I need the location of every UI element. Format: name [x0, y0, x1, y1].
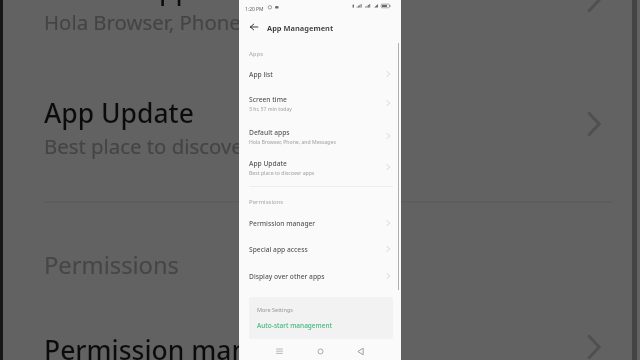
button[interactable]: Special app access [239, 236, 401, 263]
staticText: Apps [249, 50, 264, 58]
button[interactable]: Default apps [3, 0, 640, 53]
button[interactable]: More Settings [249, 297, 393, 339]
staticText: App list [249, 70, 273, 79]
button[interactable]: App list [239, 61, 401, 88]
staticText: Default apps [44, 0, 205, 7]
staticText: Best place to discover apps [44, 132, 303, 160]
staticText: Permissions [249, 198, 284, 206]
button[interactable]: Back [249, 22, 258, 31]
staticText: Screen time [249, 95, 287, 104]
staticText: Permissions [44, 249, 179, 281]
staticText: Permission manager [249, 219, 316, 228]
staticText: Special app access [249, 245, 308, 254]
button[interactable]: App Update [239, 154, 401, 180]
button[interactable]: Back [353, 344, 367, 358]
staticText: App Management [267, 23, 334, 33]
staticText: Hola Browser, Phone, and Messages [44, 8, 388, 36]
button[interactable]: Permission manager [239, 210, 401, 237]
staticText: Display over other apps [249, 272, 325, 281]
staticText: 3 hr, 57 min today [249, 105, 292, 112]
button[interactable]: App Update [3, 74, 640, 177]
button[interactable]: Permission manager [3, 295, 640, 360]
staticText: Hola Browser, Phone, and Messages [249, 138, 336, 145]
button[interactable]: Default apps [239, 123, 401, 149]
staticText: Permission manager [44, 332, 307, 360]
button[interactable]: Display over other apps [239, 263, 401, 290]
staticText: App Update [249, 159, 287, 168]
button[interactable]: Home [313, 344, 327, 358]
staticText: Best place to discover apps [249, 169, 315, 176]
staticText: More Settings [257, 306, 293, 313]
staticText: Auto-start management [257, 321, 333, 330]
button[interactable]: Recent apps [272, 344, 286, 358]
staticText: 1:20 PM [245, 6, 264, 13]
staticText: App Update [44, 95, 194, 131]
staticText: Default apps [249, 128, 290, 137]
button[interactable]: Screen time [239, 90, 401, 116]
